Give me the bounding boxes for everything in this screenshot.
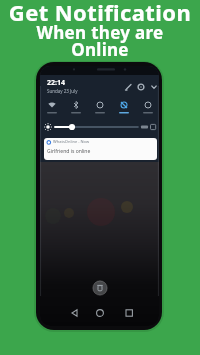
staticText: 22:14 [47,78,65,88]
button[interactable] [90,305,110,321]
staticText: Girlfriend is online [47,148,91,155]
staticText: Get Notification [0,0,200,27]
button[interactable] [92,280,108,296]
button[interactable] [119,305,139,321]
button[interactable]: WhatsOnline - Now [44,138,157,160]
staticText: WhatsOnline - Now [53,139,90,144]
staticText: Sunday 23 July [47,88,78,94]
staticText: When they are [0,21,200,44]
button[interactable] [64,305,84,321]
staticText: Online [0,38,200,61]
